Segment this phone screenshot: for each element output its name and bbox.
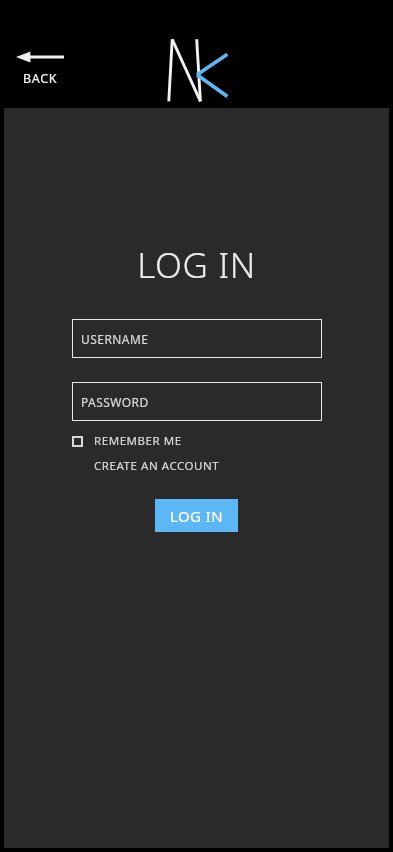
staticText: USERNAME	[81, 331, 149, 347]
button[interactable]: REMEMBER ME	[72, 433, 322, 449]
staticText: LOG IN	[137, 241, 256, 289]
button[interactable]: LOG IN	[155, 499, 238, 532]
button[interactable]: USERNAME	[72, 319, 322, 358]
staticText: PASSWORD	[81, 394, 149, 410]
staticText: CREATE AN ACCOUNT	[94, 458, 220, 474]
button[interactable]: CREATE AN ACCOUNT	[94, 458, 220, 474]
other: NK logo	[166, 38, 228, 102]
staticText: LOG IN	[170, 506, 223, 526]
staticText: BACK	[23, 70, 58, 87]
button[interactable]: Back	[12, 46, 68, 89]
staticText: REMEMBER ME	[94, 433, 182, 449]
button[interactable]: PASSWORD	[72, 382, 322, 421]
